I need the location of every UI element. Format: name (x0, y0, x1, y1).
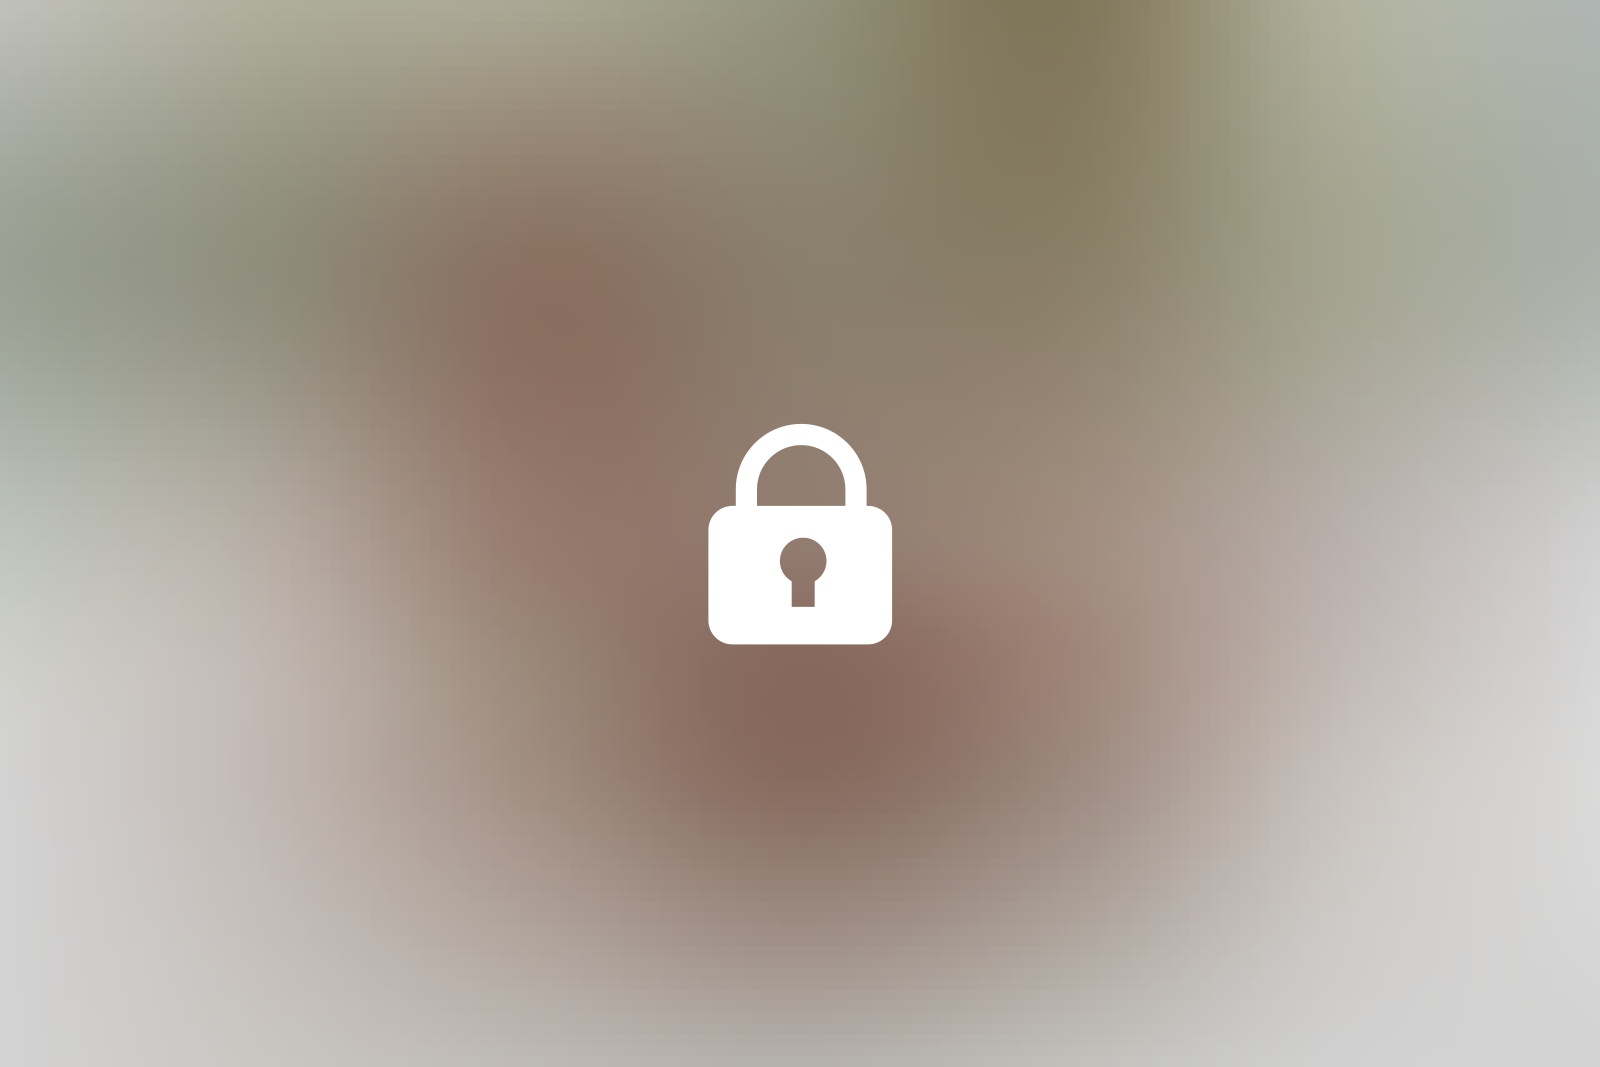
button[interactable]: Locked (708, 424, 892, 644)
